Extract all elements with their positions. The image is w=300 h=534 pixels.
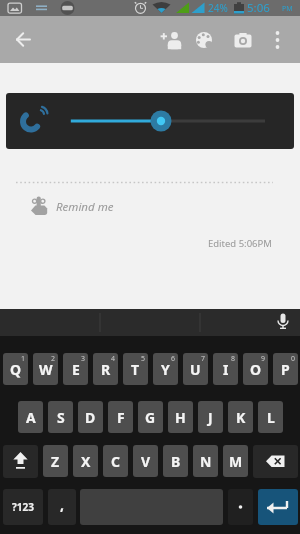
button[interactable] <box>6 28 40 52</box>
button[interactable]: J <box>198 401 223 433</box>
staticText: C <box>111 452 120 471</box>
staticText: 0 <box>291 354 296 364</box>
button[interactable]: S <box>48 401 73 433</box>
button[interactable] <box>258 489 298 525</box>
staticText: X <box>81 452 91 471</box>
button[interactable]: N <box>193 445 218 477</box>
button[interactable]: U <box>183 353 208 385</box>
button[interactable]: Z <box>43 445 68 477</box>
button[interactable]: P <box>273 353 298 385</box>
staticText: E <box>72 360 80 379</box>
staticText: H <box>175 408 186 427</box>
button[interactable]: D <box>78 401 103 433</box>
button[interactable]: Q <box>3 353 28 385</box>
staticText: J <box>208 408 213 427</box>
staticText: B <box>171 452 181 471</box>
button[interactable] <box>266 27 290 53</box>
button[interactable]: L <box>258 401 283 433</box>
button[interactable]: W <box>33 353 58 385</box>
staticText: 6 <box>171 354 176 364</box>
button[interactable]: O <box>243 353 268 385</box>
staticText: 7 <box>201 354 206 364</box>
staticText: 4 <box>111 354 116 364</box>
button[interactable] <box>229 27 257 53</box>
staticText: M <box>229 452 243 471</box>
staticText: L <box>267 408 275 427</box>
staticText: Y <box>161 360 170 379</box>
button[interactable]: Y <box>153 353 178 385</box>
staticText: Z <box>51 452 60 471</box>
button[interactable]: I <box>213 353 238 385</box>
staticText: T <box>131 360 140 379</box>
button[interactable]: M <box>223 445 248 477</box>
staticText: PM <box>282 4 293 14</box>
staticText: 2 <box>51 354 56 364</box>
staticText: R <box>101 360 111 379</box>
button[interactable]: Remind me <box>56 199 114 215</box>
button[interactable]: K <box>228 401 253 433</box>
button[interactable]: G <box>138 401 163 433</box>
button[interactable]: X <box>73 445 98 477</box>
button[interactable]: H <box>168 401 193 433</box>
staticText: 24% <box>208 1 228 15</box>
staticText: 9 <box>261 354 266 364</box>
button[interactable] <box>253 445 298 478</box>
button[interactable] <box>191 27 217 53</box>
staticText: 5 <box>141 354 146 364</box>
staticText: I <box>223 360 229 379</box>
staticText: 5:06 <box>247 0 270 16</box>
staticText: Q <box>10 360 22 379</box>
button[interactable]: R <box>93 353 118 385</box>
staticText: K <box>236 408 246 427</box>
button[interactable]: V <box>133 445 158 477</box>
button[interactable] <box>3 445 38 478</box>
staticText: ?123 <box>12 500 34 514</box>
staticText: G <box>145 408 156 427</box>
staticText: P <box>281 360 290 379</box>
button[interactable]: ?123 <box>3 489 43 525</box>
button[interactable] <box>158 27 186 53</box>
staticText: , <box>60 495 64 514</box>
staticText: D <box>85 408 96 427</box>
staticText: U <box>190 360 201 379</box>
staticText: N <box>200 452 212 471</box>
staticText: A <box>26 408 36 427</box>
staticText: F <box>117 408 125 427</box>
button[interactable]: A <box>18 401 43 433</box>
button[interactable]: B <box>163 445 188 477</box>
staticText: 8 <box>231 354 236 364</box>
button[interactable]: C <box>103 445 128 477</box>
staticText: O <box>250 360 262 379</box>
button[interactable]: E <box>63 353 88 385</box>
staticText: 3 <box>81 354 86 364</box>
staticText: 1 <box>21 354 26 364</box>
button[interactable]: F <box>108 401 133 433</box>
staticText: V <box>141 452 151 471</box>
button[interactable] <box>228 489 253 525</box>
staticText: Edited 5:06PM <box>208 237 272 250</box>
staticText: W <box>39 360 53 379</box>
staticText: S <box>57 408 65 427</box>
button[interactable]: , <box>48 489 76 525</box>
button[interactable]: T <box>123 353 148 385</box>
